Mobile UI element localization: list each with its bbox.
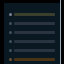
button[interactable]: [4, 37, 61, 46]
button[interactable]: [4, 10, 61, 19]
button[interactable]: [4, 46, 61, 55]
button[interactable]: [4, 28, 61, 37]
button[interactable]: [4, 55, 61, 64]
button[interactable]: [4, 19, 61, 28]
